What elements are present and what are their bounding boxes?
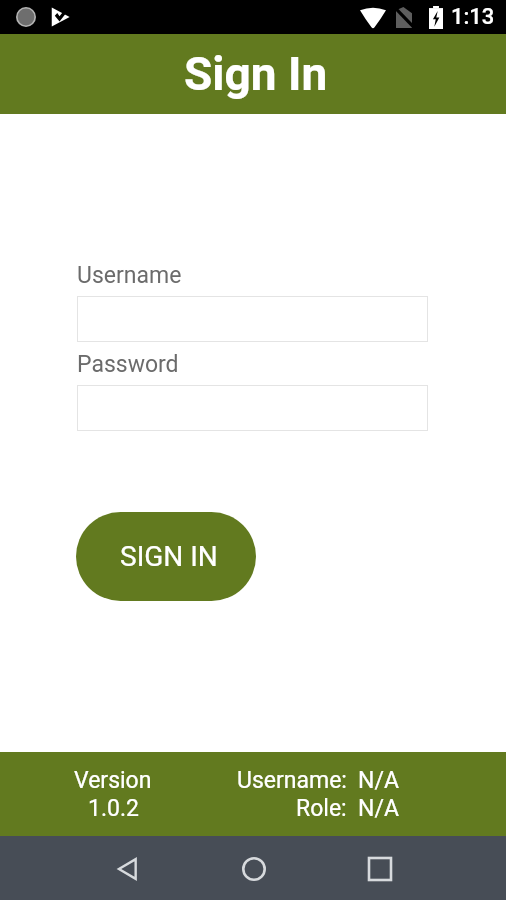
button[interactable]: Back bbox=[96, 837, 159, 900]
staticText: N/A bbox=[358, 795, 399, 822]
staticText: Password bbox=[77, 351, 179, 378]
button[interactable] bbox=[77, 385, 428, 431]
staticText: 1.0.2 bbox=[88, 795, 139, 822]
button[interactable] bbox=[77, 296, 428, 342]
staticText: N/A bbox=[358, 767, 399, 794]
staticText: Username bbox=[77, 262, 182, 289]
staticText: Version bbox=[74, 767, 152, 794]
staticText: 1:13 bbox=[451, 4, 495, 30]
button[interactable]: Recent apps bbox=[348, 837, 411, 900]
button[interactable]: Home bbox=[222, 837, 285, 900]
staticText: Username: bbox=[237, 767, 347, 794]
staticText: Sign In bbox=[184, 47, 328, 101]
button[interactable]: SIGN IN bbox=[76, 512, 256, 601]
staticText: Role: bbox=[296, 795, 347, 822]
staticText: SIGN IN bbox=[120, 540, 218, 573]
